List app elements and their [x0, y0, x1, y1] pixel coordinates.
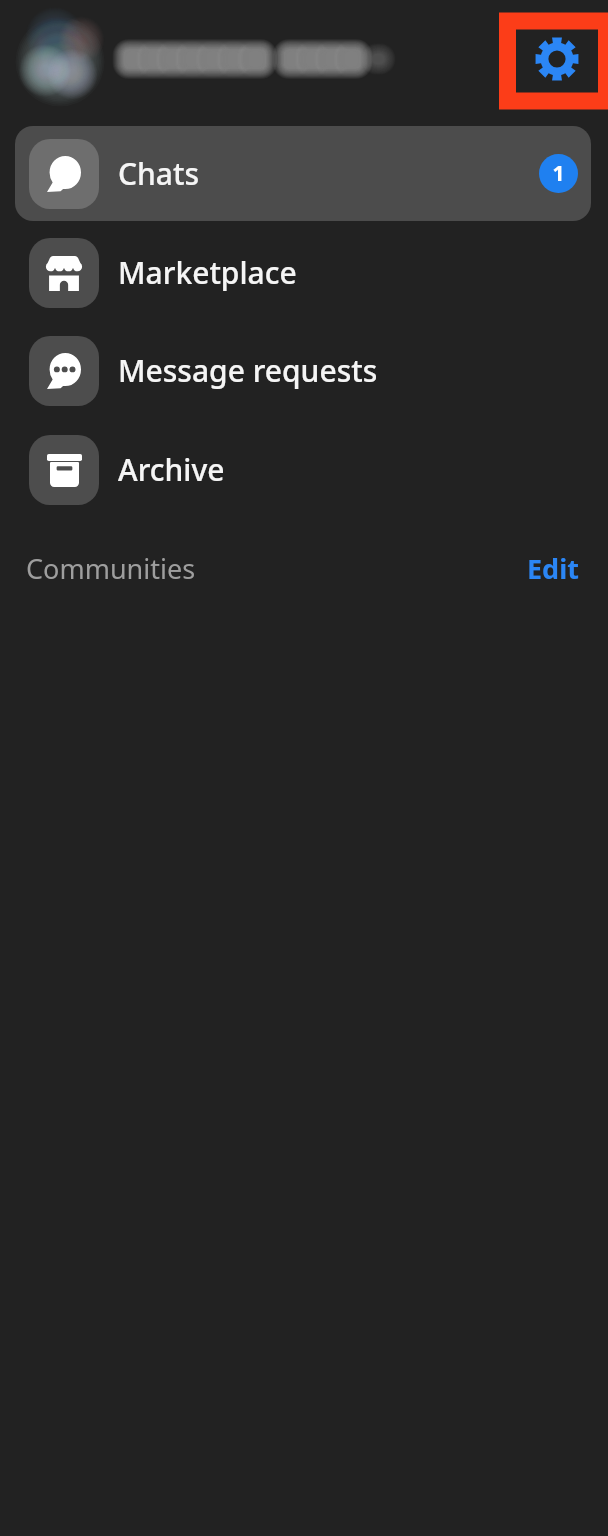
staticText: Archive [118, 449, 225, 490]
staticText: Communities [26, 550, 196, 587]
staticText: 1 [552, 159, 565, 188]
button[interactable]: Settings [499, 13, 608, 109]
staticText: Edit [527, 550, 579, 587]
staticText: Marketplace [118, 252, 297, 293]
staticText: Chats [118, 153, 200, 194]
staticText: Message requests [118, 350, 378, 391]
button[interactable]: Communities [26, 550, 196, 587]
button[interactable]: Archive [15, 422, 591, 517]
button[interactable]: Message requests [15, 323, 591, 418]
button[interactable]: Edit [527, 550, 579, 587]
button[interactable]: Chats [15, 126, 591, 221]
button[interactable]: Account name [112, 28, 388, 90]
button[interactable]: Marketplace [15, 225, 591, 320]
button[interactable]: Profile photo [16, 16, 104, 104]
